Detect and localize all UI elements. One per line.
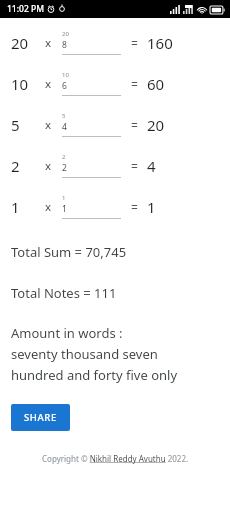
staticText: x <box>45 117 52 133</box>
button[interactable]: SHARE <box>11 404 70 431</box>
staticText: 20 <box>11 33 29 53</box>
staticText: x <box>45 35 52 51</box>
staticText: Amount in words : <box>11 324 123 342</box>
staticText: 6 <box>62 80 67 92</box>
staticText: = <box>131 199 138 215</box>
staticText: 160 <box>147 33 173 53</box>
staticText: 60 <box>147 74 165 94</box>
staticText: x <box>45 158 52 174</box>
staticText: 1 <box>147 197 156 217</box>
staticText: 5 <box>11 115 20 135</box>
button[interactable]: Note count for 5 <box>62 112 121 137</box>
staticText: 2 <box>11 156 20 176</box>
staticText: = <box>131 76 138 92</box>
staticText: 1 <box>62 194 66 202</box>
staticText: Total Sum = 70,745 <box>11 243 127 261</box>
button[interactable]: Note count for 10 <box>62 71 121 96</box>
staticText: = <box>131 35 138 51</box>
staticText: = <box>131 158 138 174</box>
staticText: 20 <box>62 30 69 38</box>
staticText: 1 <box>11 197 20 217</box>
staticText: x <box>45 199 52 215</box>
staticText: x <box>45 76 52 92</box>
button[interactable]: Note count for 1 <box>62 194 121 219</box>
staticText: 2 <box>62 162 67 174</box>
staticText: 20 <box>147 115 165 135</box>
staticText: Total Notes = 111 <box>11 284 117 302</box>
staticText: hundred and forty five only <box>11 366 178 384</box>
staticText: 10 <box>62 71 69 79</box>
button[interactable]: Note count for 2 <box>62 153 121 178</box>
staticText: 11:02 PM <box>7 3 44 15</box>
staticText: Copyright © Nikhil Reddy Avuthu 2022. <box>42 453 189 464</box>
staticText: SHARE <box>24 411 57 424</box>
staticText: seventy thousand seven <box>11 345 158 363</box>
staticText: 5 <box>62 112 66 120</box>
button[interactable]: Note count for 20 <box>62 30 121 55</box>
staticText: 10 <box>11 74 29 94</box>
staticText: 1 <box>62 203 67 215</box>
staticText: 2 <box>62 153 66 161</box>
staticText: 8 <box>62 39 67 51</box>
staticText: 4 <box>62 121 67 133</box>
staticText: 4 <box>147 156 156 176</box>
staticText: = <box>131 117 138 133</box>
